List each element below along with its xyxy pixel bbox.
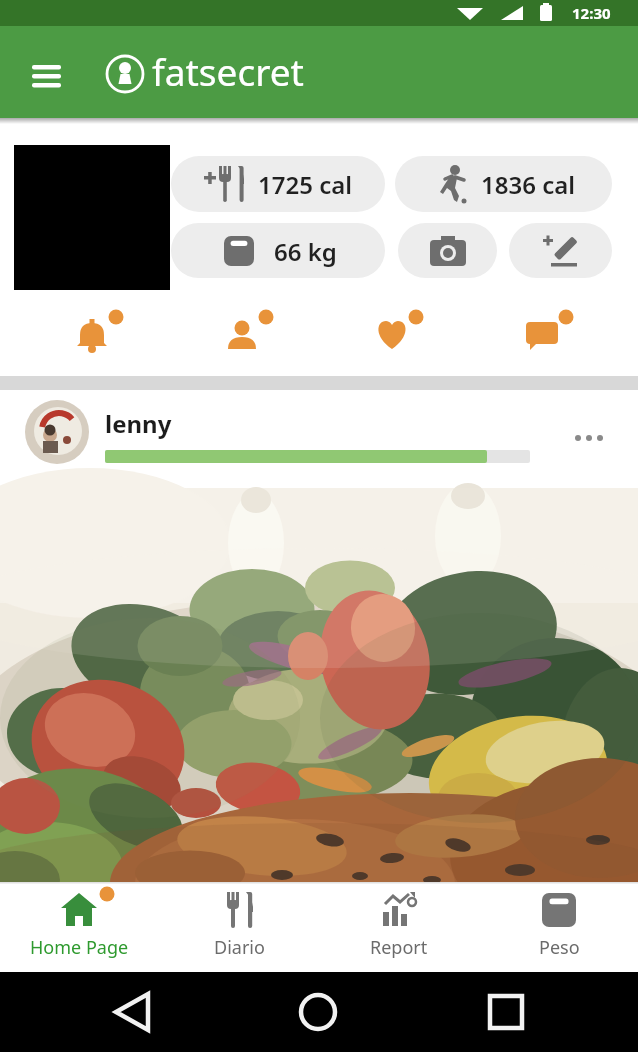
staticText: Report (370, 935, 428, 960)
button[interactable] (398, 223, 497, 278)
button[interactable] (60, 303, 128, 365)
staticText: lenny (105, 407, 172, 440)
staticText: Diario (214, 935, 265, 960)
button[interactable]: 66 kg (171, 223, 385, 278)
button[interactable] (210, 303, 278, 365)
button[interactable]: Home Page (8, 884, 150, 970)
staticText: 1836 cal (481, 168, 576, 201)
button[interactable]: 1725 cal (171, 156, 385, 212)
staticText: 66 kg (274, 235, 337, 268)
button[interactable]: 1836 cal (395, 156, 612, 212)
staticText: Peso (539, 935, 580, 960)
staticText: Home Page (30, 935, 129, 960)
button[interactable]: Diario (168, 884, 310, 970)
button[interactable] (360, 303, 428, 365)
staticText: 1725 cal (258, 168, 353, 201)
staticText: 12:30 (572, 3, 611, 23)
button[interactable] (510, 303, 578, 365)
button[interactable]: lenny (0, 390, 638, 488)
button[interactable]: fatsecret (104, 46, 304, 96)
button[interactable]: Peso (488, 884, 630, 970)
staticText: fatsecret (152, 46, 304, 96)
button[interactable] (20, 51, 72, 95)
button[interactable]: Report (328, 884, 470, 970)
button[interactable] (509, 223, 612, 278)
